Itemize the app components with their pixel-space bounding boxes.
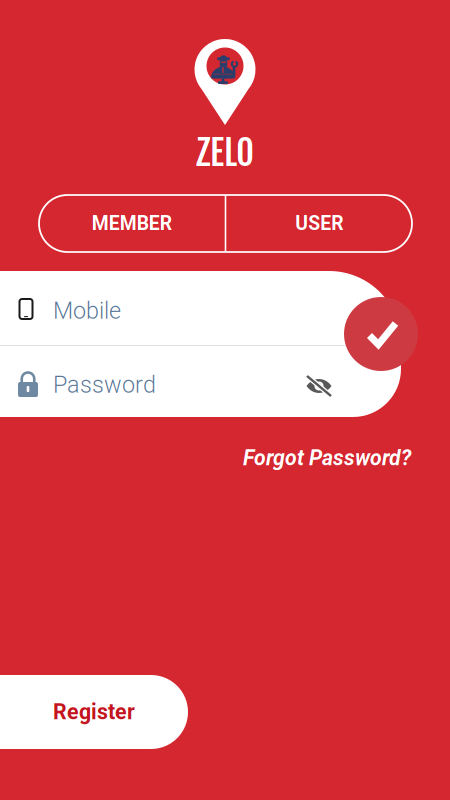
staticText: Register [53,699,135,724]
staticText: Password [53,371,156,398]
staticText: Forgot Password? [243,445,411,470]
staticText: Mobile [53,297,121,324]
button[interactable]: Register [0,675,188,749]
button[interactable]: Show password [297,366,341,406]
button[interactable]: USER [226,195,412,252]
staticText: USER [295,212,343,235]
staticText: MEMBER [92,212,172,235]
button[interactable]: Submit [344,297,418,371]
button[interactable]: MEMBER [39,195,225,252]
button[interactable]: Forgot Password? [243,443,411,473]
staticText: ZELO [196,131,254,175]
